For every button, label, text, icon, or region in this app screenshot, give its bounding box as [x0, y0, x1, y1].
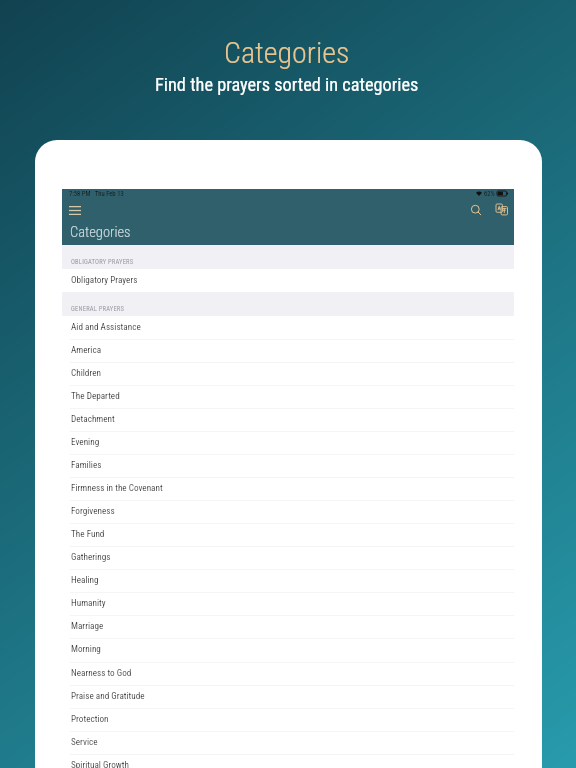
- staticText: Categories: [224, 35, 350, 70]
- button[interactable]: Nearness to God: [62, 662, 514, 685]
- button[interactable]: Healing: [62, 569, 514, 592]
- staticText: GENERAL PRAYERS: [71, 305, 125, 313]
- button[interactable]: The Departed: [62, 385, 514, 408]
- button[interactable]: The Fund: [62, 523, 514, 546]
- staticText: Humanity: [71, 597, 106, 608]
- button[interactable]: Families: [62, 454, 514, 477]
- button[interactable]: America: [62, 339, 514, 362]
- staticText: Evening: [71, 436, 100, 447]
- staticText: The Fund: [71, 528, 105, 539]
- staticText: Protection: [71, 713, 109, 724]
- staticText: The Departed: [71, 390, 120, 401]
- button[interactable]: Translate: [492, 200, 512, 220]
- button[interactable]: Spiritual Growth: [62, 754, 514, 768]
- staticText: 62%: [484, 190, 495, 198]
- staticText: Detachment: [71, 413, 115, 424]
- staticText: Gatherings: [71, 551, 111, 562]
- button[interactable]: Evening: [62, 431, 514, 454]
- staticText: Forgiveness: [71, 505, 115, 516]
- staticText: America: [71, 344, 102, 355]
- button[interactable]: Search: [466, 200, 486, 220]
- staticText: Praise and Gratitude: [71, 690, 145, 701]
- button[interactable]: Morning: [62, 638, 514, 661]
- button[interactable]: Children: [62, 362, 514, 385]
- staticText: Morning: [71, 643, 101, 654]
- button[interactable]: Humanity: [62, 592, 514, 615]
- button[interactable]: Protection: [62, 708, 514, 731]
- button[interactable]: Open navigation menu: [65, 200, 85, 220]
- button[interactable]: Marriage: [62, 615, 514, 638]
- button[interactable]: Service: [62, 731, 514, 754]
- staticText: Children: [71, 367, 101, 378]
- button[interactable]: Aid and Assistance: [62, 316, 514, 339]
- staticText: Obligatory Prayers: [71, 274, 138, 285]
- button[interactable]: Firmness in the Covenant: [62, 477, 514, 500]
- button[interactable]: Obligatory Prayers: [62, 269, 514, 292]
- staticText: 7:58 PM Thu Feb 13: [69, 190, 124, 198]
- staticText: Find the prayers sorted in categories: [155, 74, 419, 95]
- staticText: Marriage: [71, 620, 104, 631]
- staticText: Nearness to God: [71, 667, 132, 678]
- button[interactable]: Detachment: [62, 408, 514, 431]
- staticText: OBLIGATORY PRAYERS: [71, 258, 134, 266]
- staticText: Families: [71, 459, 102, 470]
- button[interactable]: Praise and Gratitude: [62, 685, 514, 708]
- staticText: Categories: [70, 224, 131, 241]
- staticText: Healing: [71, 574, 99, 585]
- button[interactable]: Gatherings: [62, 546, 514, 569]
- staticText: Service: [71, 736, 98, 747]
- staticText: Spiritual Growth: [71, 759, 129, 768]
- staticText: Aid and Assistance: [71, 321, 141, 332]
- button[interactable]: Forgiveness: [62, 500, 514, 523]
- staticText: Firmness in the Covenant: [71, 482, 163, 493]
